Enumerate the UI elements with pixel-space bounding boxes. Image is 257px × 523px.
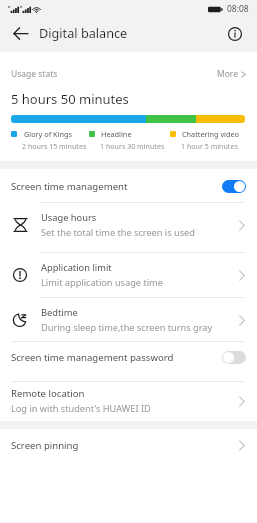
staticText: Usage hours bbox=[41, 211, 97, 224]
button[interactable]: Usage hours bbox=[0, 203, 257, 247]
staticText: Digital balance bbox=[39, 24, 128, 41]
staticText: Glory of Kings bbox=[24, 129, 72, 139]
staticText: Limit application usage time bbox=[41, 276, 163, 289]
staticText: During sleep time,the screen turns gray bbox=[41, 321, 213, 334]
button[interactable]: Info bbox=[221, 20, 248, 47]
staticText: 1 hour 5 minutes bbox=[181, 141, 238, 151]
staticText: Headline bbox=[101, 129, 132, 139]
staticText: Log in with student's HUAWEI ID bbox=[11, 402, 151, 415]
staticText: Screen time management bbox=[11, 180, 128, 193]
staticText: Screen pinning bbox=[11, 439, 79, 452]
button[interactable]: Remote location bbox=[0, 382, 257, 420]
staticText: Screen time management password bbox=[11, 351, 174, 364]
staticText: Usage stats bbox=[11, 68, 58, 80]
button[interactable]: Application limit bbox=[0, 253, 257, 297]
staticText: Bedtime bbox=[41, 306, 78, 319]
staticText: Application limit bbox=[41, 261, 112, 274]
staticText: Chattering video bbox=[182, 129, 239, 139]
staticText: More bbox=[217, 68, 238, 80]
staticText: 08:08 bbox=[227, 3, 249, 15]
staticText: Set the total time the screen is used bbox=[41, 226, 195, 239]
button[interactable]: Screen pinning bbox=[0, 429, 257, 461]
staticText: 2 hours 15 minutes bbox=[22, 141, 87, 151]
button[interactable]: Screen time management password bbox=[0, 342, 257, 372]
button[interactable]: Bedtime bbox=[0, 298, 257, 342]
staticText: 5 hours 50 minutes bbox=[11, 90, 129, 108]
staticText: 1 hours 30 minutes bbox=[100, 141, 165, 151]
button[interactable]: Usage stats bbox=[0, 62, 257, 86]
staticText: Remote location bbox=[11, 387, 85, 400]
button[interactable]: Back bbox=[7, 20, 34, 47]
button[interactable]: Screen time management bbox=[0, 169, 257, 203]
